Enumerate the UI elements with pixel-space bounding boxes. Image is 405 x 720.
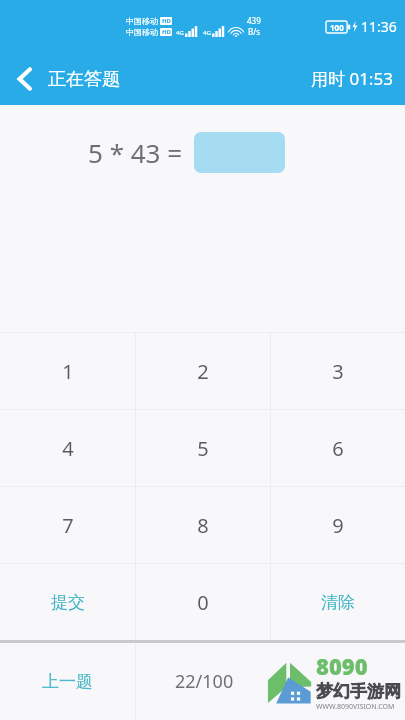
staticText: 上一题	[42, 671, 93, 692]
staticText: 用时 01:53	[311, 67, 393, 90]
staticText: 清除	[321, 592, 355, 613]
staticText: HD	[162, 17, 171, 25]
staticText: 9	[332, 512, 344, 539]
staticText: 6	[332, 435, 344, 462]
staticText: WWW.8090VISION.COM	[316, 702, 395, 712]
staticText: 1	[62, 358, 74, 385]
staticText: 4G	[176, 29, 184, 37]
staticText: 11:36	[361, 17, 397, 36]
button[interactable]: 上一题	[0, 643, 135, 720]
staticText: 提交	[51, 592, 85, 613]
staticText: 8090	[316, 651, 368, 681]
button[interactable]: Back	[0, 55, 48, 103]
staticText: 中国移动	[126, 27, 158, 37]
staticText: 0	[197, 589, 209, 616]
staticText: B/s	[248, 26, 261, 37]
staticText: 5	[197, 435, 209, 462]
staticText: 8	[197, 512, 209, 539]
staticText: 2	[197, 358, 209, 385]
button[interactable]: 1	[0, 333, 135, 409]
button[interactable]: 9	[271, 487, 405, 563]
staticText: 100	[330, 22, 344, 33]
staticText: 4	[62, 435, 74, 462]
staticText: 梦幻手游网	[316, 681, 401, 702]
staticText: 3	[332, 358, 344, 385]
button[interactable]: 7	[0, 487, 135, 563]
staticText: 22/100	[175, 669, 234, 694]
button[interactable]: 3	[271, 333, 405, 409]
staticText: 439	[247, 15, 261, 26]
button[interactable]: 2	[136, 333, 270, 409]
button[interactable]: 4	[0, 410, 135, 486]
button[interactable]: 6	[271, 410, 405, 486]
staticText: 5 * 43 =	[88, 135, 183, 170]
button[interactable]: 8	[136, 487, 270, 563]
staticText: HD	[162, 28, 171, 36]
staticText: 中国移动	[126, 16, 158, 26]
staticText: 7	[62, 512, 74, 539]
button[interactable]: 清除	[271, 564, 405, 640]
staticText: 4G	[203, 29, 211, 37]
button[interactable]: 0	[136, 564, 270, 640]
button[interactable]	[194, 132, 285, 173]
button[interactable]: 提交	[0, 564, 135, 640]
staticText: 正在答题	[48, 68, 120, 91]
button[interactable]: 5	[136, 410, 270, 486]
